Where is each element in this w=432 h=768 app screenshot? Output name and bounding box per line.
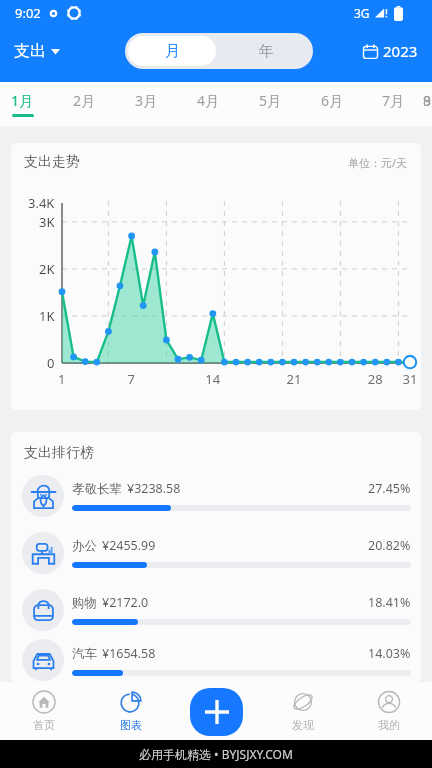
button[interactable]: 首页	[0, 682, 87, 740]
staticText: ¥2172.0	[102, 594, 149, 611]
staticText: 14.03%	[368, 645, 411, 662]
button[interactable]: 3月	[115, 82, 177, 126]
staticText: 2月	[73, 91, 96, 110]
staticText: 月	[165, 42, 180, 61]
button[interactable]: 6月	[301, 82, 363, 126]
staticText: 4月	[197, 91, 220, 110]
button[interactable]: 汽车	[11, 638, 421, 682]
staticText: 1月	[11, 91, 34, 110]
button[interactable]: 7月	[363, 82, 423, 126]
staticText: 支出	[14, 41, 46, 61]
button[interactable]: 月	[128, 36, 216, 66]
staticText: 7月	[382, 91, 405, 110]
staticText: 3月	[135, 91, 158, 110]
button[interactable]: 办公	[11, 524, 421, 581]
staticText: 18.41%	[368, 594, 411, 611]
button[interactable]: Add	[190, 688, 243, 736]
staticText: 27.45%	[368, 480, 411, 497]
button[interactable]: 支出	[14, 33, 60, 69]
staticText: 2023	[383, 41, 418, 61]
staticText: 购物	[72, 595, 97, 611]
staticText: 汽车	[72, 646, 97, 662]
staticText: 首页	[33, 718, 55, 732]
button[interactable]: 购物	[11, 581, 421, 638]
staticText: 支出排行榜	[24, 444, 94, 462]
button[interactable]: 我的	[346, 682, 432, 740]
staticText: 必用手机精选 • BYJSJXY.COM	[139, 746, 293, 762]
button[interactable]: 图表	[87, 682, 174, 740]
button[interactable]: 发现	[260, 682, 346, 740]
staticText: 3G	[354, 5, 370, 21]
staticText: ¥1654.58	[102, 645, 156, 662]
button[interactable]: 4月	[177, 82, 239, 126]
staticText: 孝敬长辈	[72, 481, 122, 497]
staticText: 20.82%	[368, 537, 411, 554]
staticText: 9:02	[15, 4, 41, 22]
button[interactable]: 年	[219, 33, 313, 69]
staticText: ¥3238.58	[127, 480, 181, 497]
staticText: ¥2455.99	[102, 537, 156, 554]
staticText: 年	[259, 42, 274, 61]
staticText: 6月	[321, 91, 344, 110]
button[interactable]: 5月	[239, 82, 301, 126]
staticText: 发现	[292, 718, 314, 732]
staticText: 我的	[378, 718, 400, 732]
staticText: 单位：元/天	[348, 155, 408, 170]
button[interactable]: 2月	[53, 82, 115, 126]
button[interactable]: 2023	[363, 33, 418, 69]
staticText: 5月	[259, 91, 282, 110]
staticText: 图表	[120, 718, 142, 732]
button[interactable]: 孝敬长辈	[11, 467, 421, 524]
staticText: 支出走势	[24, 153, 80, 171]
staticText: 办公	[72, 538, 97, 554]
button[interactable]: 1月	[0, 82, 53, 126]
